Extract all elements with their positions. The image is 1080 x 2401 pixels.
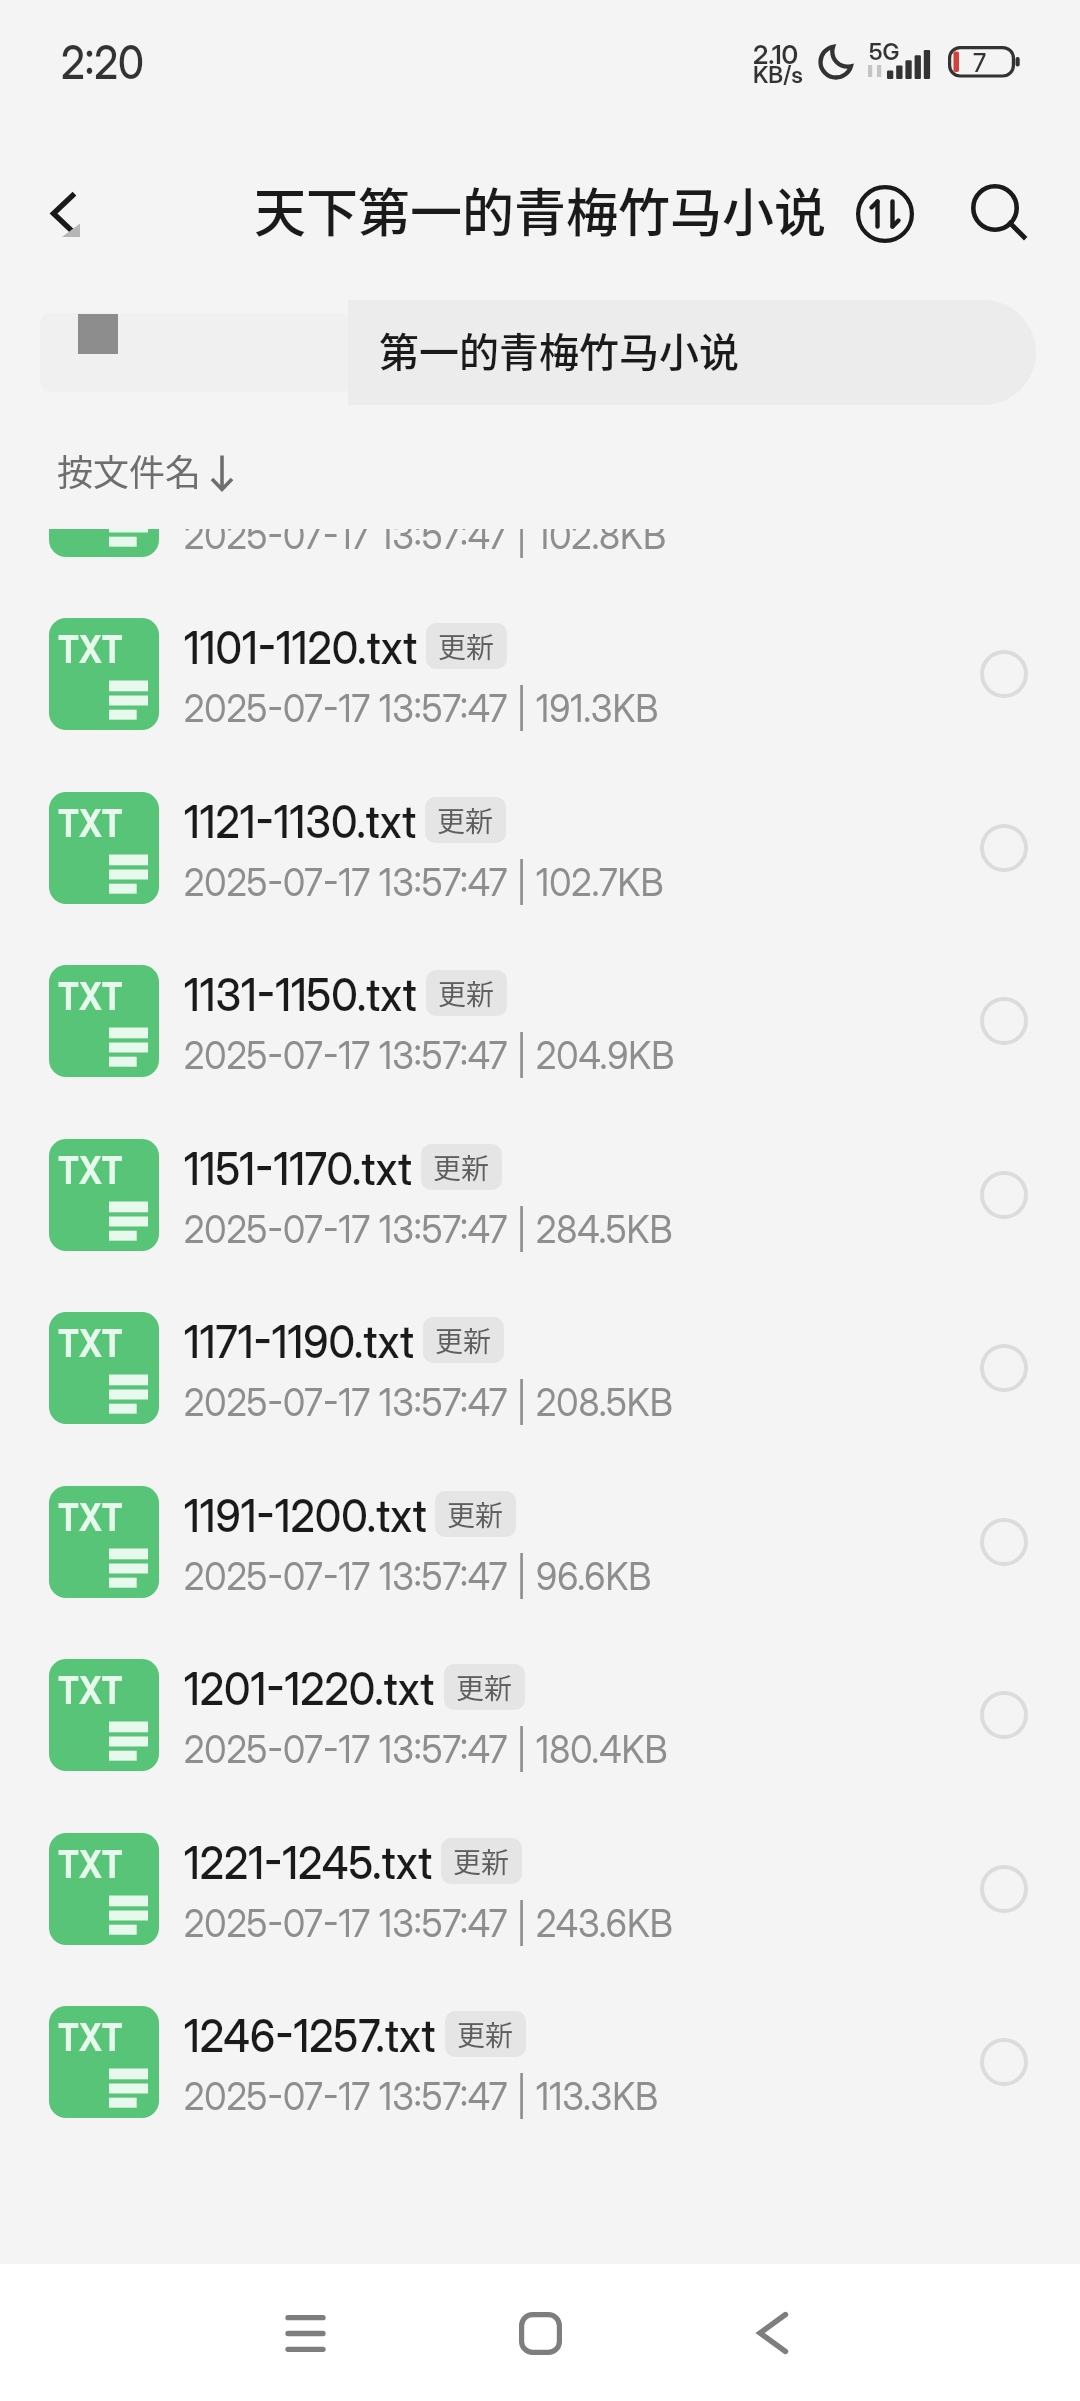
staticText: 2025-07-17 13:57:47 | 243.6KB [184, 1900, 674, 1946]
staticText: 1121-1130.txt [184, 794, 416, 849]
staticText: 更新 [457, 2014, 514, 2055]
staticText: 按文件名 [57, 444, 202, 496]
staticText: 更新 [438, 626, 495, 667]
staticText: TXT [58, 1841, 123, 1887]
staticText: 1221-1245.txt [184, 1835, 432, 1890]
button[interactable]: TXT [0, 934, 1080, 1108]
button[interactable]: TXT [0, 1281, 1080, 1455]
staticText: 2025-07-17 13:57:47 | 102.8KB [184, 529, 666, 558]
button[interactable]: Storage root [40, 313, 352, 392]
button[interactable]: Select file [959, 803, 1049, 893]
staticText: 1101-1120.txt [184, 620, 417, 675]
button[interactable]: Select file [959, 629, 1049, 719]
staticText: TXT [58, 626, 123, 672]
staticText: 更新 [437, 800, 494, 841]
staticText: TXT [58, 800, 123, 846]
button[interactable]: TXT [0, 1628, 1080, 1802]
button[interactable]: TXT [0, 587, 1080, 761]
button[interactable]: Recents [245, 2273, 365, 2393]
staticText: 更新 [438, 973, 495, 1014]
staticText: 2025-07-17 13:57:47 | 102.7KB [184, 859, 664, 905]
staticText: 更新 [456, 1667, 513, 1708]
staticText: 1131-1150.txt [184, 967, 417, 1022]
staticText: 2025-07-17 13:57:47 | 208.5KB [184, 1379, 673, 1425]
staticText: 第一的青梅竹马小说 [379, 321, 739, 379]
button[interactable]: Select file [959, 976, 1049, 1066]
button[interactable]: 第一的青梅竹马小说 [348, 300, 1036, 405]
staticText: 2025-07-17 13:57:47 | 96.6KB [184, 1553, 652, 1599]
staticText: 更新 [447, 1494, 504, 1535]
button[interactable]: TXT [0, 761, 1080, 935]
button[interactable]: Select file [959, 2017, 1049, 2107]
staticText: 2025-07-17 13:57:47 | 284.5KB [184, 1206, 673, 1252]
button[interactable]: Select file [959, 1670, 1049, 1760]
button[interactable]: Sort order [840, 169, 929, 258]
staticText: TXT [58, 1147, 123, 1193]
button[interactable]: Search [953, 166, 1042, 255]
staticText: 1246-1257.txt [184, 2008, 436, 2063]
staticText: TXT [58, 973, 123, 1019]
staticText: 2:20 [61, 34, 145, 90]
staticText: 更新 [433, 1147, 490, 1188]
staticText: 5G [869, 38, 900, 66]
staticText: 天下第一的青梅竹马小说 [254, 172, 827, 247]
button[interactable]: TXT [0, 1975, 1080, 2149]
staticText: 2025-07-17 13:57:47 | 180.4KB [184, 1726, 668, 1772]
staticText: 1191-1200.txt [184, 1488, 427, 1543]
button[interactable]: 按文件名 [40, 438, 234, 502]
button[interactable]: Select file [959, 1497, 1049, 1587]
staticText: 更新 [453, 1841, 510, 1882]
staticText: 1151-1170.txt [184, 1141, 413, 1196]
button[interactable]: TXT [0, 1108, 1080, 1282]
staticText: TXT [58, 1667, 123, 1713]
staticText: KB/s [753, 61, 803, 89]
staticText: TXT [58, 2014, 123, 2060]
button[interactable]: Back [14, 165, 110, 261]
staticText: TXT [58, 1494, 123, 1540]
staticText: 2025-07-17 13:57:47 | 191.3KB [184, 685, 659, 731]
staticText: TXT [58, 1320, 123, 1366]
button[interactable]: Home [480, 2273, 600, 2393]
button[interactable]: TXT [0, 1455, 1080, 1629]
staticText: 1201-1220.txt [184, 1661, 435, 1716]
staticText: 2.10 [753, 39, 799, 70]
button[interactable]: TXT [0, 1802, 1080, 1976]
staticText: 更新 [435, 1320, 492, 1361]
staticText: 2025-07-17 13:57:47 | 204.9KB [184, 1032, 675, 1078]
button[interactable]: Select file [959, 1844, 1049, 1934]
button[interactable]: Back [712, 2273, 832, 2393]
button[interactable]: Select file [959, 1323, 1049, 1413]
staticText: 7 [973, 48, 987, 78]
button[interactable]: Select file [959, 1150, 1049, 1240]
button[interactable]: TXT [0, 529, 1080, 588]
staticText: 1171-1190.txt [184, 1314, 415, 1369]
staticText: 2025-07-17 13:57:47 | 113.3KB [184, 2073, 659, 2119]
